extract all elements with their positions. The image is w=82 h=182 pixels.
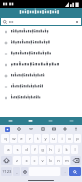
button[interactable]: c (31, 156, 38, 165)
button[interactable]: Shift (1, 156, 12, 165)
button[interactable]: j (55, 145, 62, 154)
button[interactable]: Clear (75, 20, 79, 24)
button[interactable]: t (34, 134, 41, 143)
button[interactable]: Keyboard tool 6 (59, 125, 70, 133)
button[interactable]: Keyboard tool 5 (48, 125, 59, 133)
button[interactable] (0, 92, 82, 103)
button[interactable]: Keyboard tool 3 (25, 125, 37, 133)
button[interactable]: p (74, 134, 81, 143)
staticText: n (57, 158, 60, 164)
staticText: g (41, 147, 44, 153)
staticText: b (49, 158, 52, 164)
button[interactable]: d (22, 145, 30, 154)
staticText: s (16, 147, 19, 153)
staticText: u (52, 136, 55, 142)
button[interactable]: Keyboard tool 4 (37, 125, 48, 133)
staticText: r (29, 136, 31, 142)
button[interactable]: e (18, 134, 25, 143)
button[interactable] (0, 59, 82, 70)
button[interactable]: r (26, 134, 33, 143)
staticText: j (58, 147, 60, 153)
button[interactable]: Keyboard tool 1 (1, 125, 13, 133)
button[interactable]: u (50, 134, 57, 143)
staticText: o (68, 136, 71, 142)
staticText: e (20, 136, 23, 142)
button[interactable]: b (47, 156, 54, 165)
button[interactable]: v (39, 156, 46, 165)
staticText: f (34, 147, 36, 153)
staticText: a (7, 147, 10, 153)
staticText: x (25, 158, 28, 164)
staticText: d (25, 147, 28, 153)
button[interactable]: x (22, 156, 30, 165)
button[interactable]: Symbols (1, 167, 12, 176)
button[interactable]: h (47, 145, 54, 154)
staticText: m (65, 158, 69, 164)
button[interactable]: o (66, 134, 73, 143)
button[interactable]: Keyboard tool 2 (13, 125, 25, 133)
button[interactable]: l (71, 145, 78, 154)
button[interactable]: a (4, 145, 12, 154)
staticText: p (76, 136, 79, 142)
staticText: y (44, 136, 47, 142)
staticText: q (4, 136, 7, 142)
button[interactable]: k (63, 145, 70, 154)
button[interactable]: Search (69, 167, 81, 176)
button[interactable]: y (42, 134, 49, 143)
button[interactable]: s (13, 145, 21, 154)
staticText: t (37, 136, 39, 142)
other: Search (3, 20, 7, 24)
staticText: c (33, 158, 36, 164)
button[interactable]: Emoji (21, 167, 28, 176)
staticText: h (49, 147, 52, 153)
button[interactable]: Keyboard tool 7 (70, 125, 81, 133)
staticText: w (12, 136, 16, 142)
staticText: k (65, 147, 68, 153)
button[interactable]: w (10, 134, 17, 143)
staticText: z (16, 158, 18, 164)
button[interactable]: Suggestion (0, 117, 20, 125)
button[interactable]: Backspace (71, 156, 81, 165)
button[interactable]: z (13, 156, 21, 165)
button[interactable]: Search field (1, 18, 81, 25)
button[interactable]: i (58, 134, 65, 143)
staticText: . (64, 169, 66, 175)
button[interactable]: , (13, 167, 20, 176)
button[interactable]: Suggestion (20, 117, 40, 125)
button[interactable]: n (55, 156, 62, 165)
staticText: i (61, 136, 63, 142)
button[interactable]: Suggestion (61, 117, 82, 125)
button[interactable] (0, 37, 82, 48)
staticText: l (74, 147, 76, 153)
button[interactable]: f (31, 145, 38, 154)
button[interactable] (0, 81, 82, 92)
button[interactable] (0, 70, 82, 81)
button[interactable]: m (63, 156, 70, 165)
button[interactable]: App title (0, 8, 82, 17)
button[interactable] (0, 48, 82, 59)
staticText: ?123 (2, 169, 12, 175)
button[interactable]: Suggestion (40, 117, 61, 125)
staticText: v (41, 158, 44, 164)
button[interactable] (0, 26, 82, 37)
button[interactable]: g (39, 145, 46, 154)
staticText: , (16, 169, 18, 175)
button[interactable]: q (1, 134, 9, 143)
